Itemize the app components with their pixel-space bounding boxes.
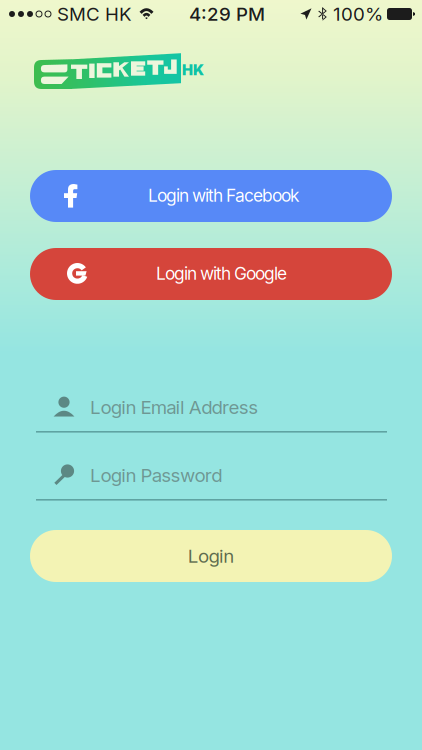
staticText: Login with Google bbox=[156, 263, 287, 284]
staticText: Login bbox=[188, 545, 234, 567]
staticText: SMC HK bbox=[57, 3, 132, 25]
staticText: Login with Facebook bbox=[148, 185, 300, 206]
button[interactable] bbox=[30, 248, 392, 300]
staticText: HK bbox=[182, 61, 204, 79]
staticText: Login Email Address bbox=[90, 396, 258, 419]
staticText: 4:29 PM bbox=[189, 3, 265, 25]
button[interactable]: Login bbox=[30, 530, 392, 582]
staticText: 100% bbox=[333, 3, 383, 25]
button[interactable] bbox=[30, 170, 392, 222]
staticText: Login Password bbox=[90, 464, 222, 487]
